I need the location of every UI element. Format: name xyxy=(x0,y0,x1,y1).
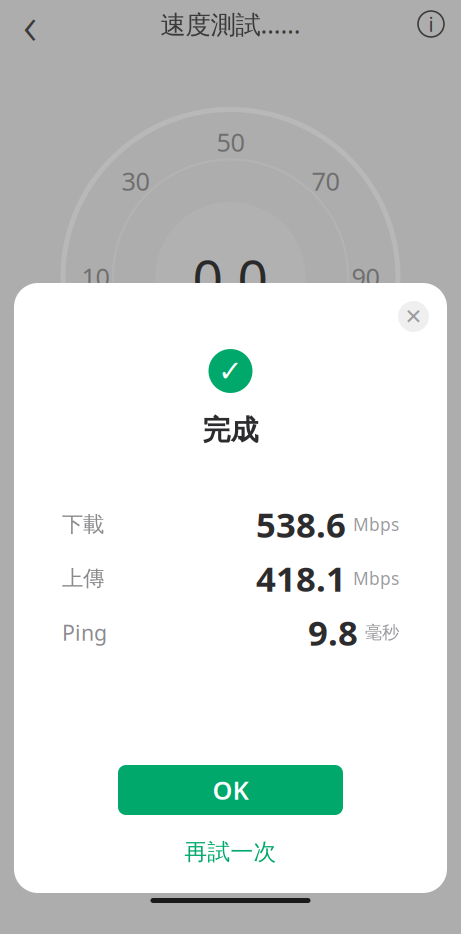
staticText: ✓ xyxy=(218,354,243,388)
staticText: 毫秒 xyxy=(365,622,399,643)
staticText: 90 xyxy=(351,260,379,294)
button[interactable]: Close xyxy=(398,301,429,332)
staticText: 418.1 xyxy=(256,555,346,601)
staticText: 下載 xyxy=(62,511,104,537)
staticText: 538.6 xyxy=(256,501,346,547)
button[interactable]: 再試一次 xyxy=(150,837,310,867)
staticText: ‹ xyxy=(23,0,37,59)
staticText: 上傳 xyxy=(62,565,104,591)
staticText: 10 xyxy=(81,260,109,294)
staticText: 完成 xyxy=(202,413,258,447)
staticText: i xyxy=(428,11,433,37)
staticText: 9.8 xyxy=(308,609,358,655)
button[interactable]: Information xyxy=(409,2,453,46)
staticText: ✕ xyxy=(404,304,422,329)
staticText: 30 xyxy=(121,164,149,198)
button[interactable]: Back xyxy=(8,2,52,46)
staticText: OK xyxy=(212,773,248,807)
staticText: 再試一次 xyxy=(184,838,276,866)
staticText: 50 xyxy=(216,125,244,159)
button[interactable]: OK xyxy=(118,765,343,815)
staticText: Mbps xyxy=(353,567,399,590)
staticText: Ping xyxy=(62,618,107,646)
staticText: 0.0 xyxy=(192,243,268,313)
staticText: Mbps xyxy=(353,513,399,536)
staticText: 70 xyxy=(311,164,339,198)
staticText: 速度測試…… xyxy=(160,7,300,41)
